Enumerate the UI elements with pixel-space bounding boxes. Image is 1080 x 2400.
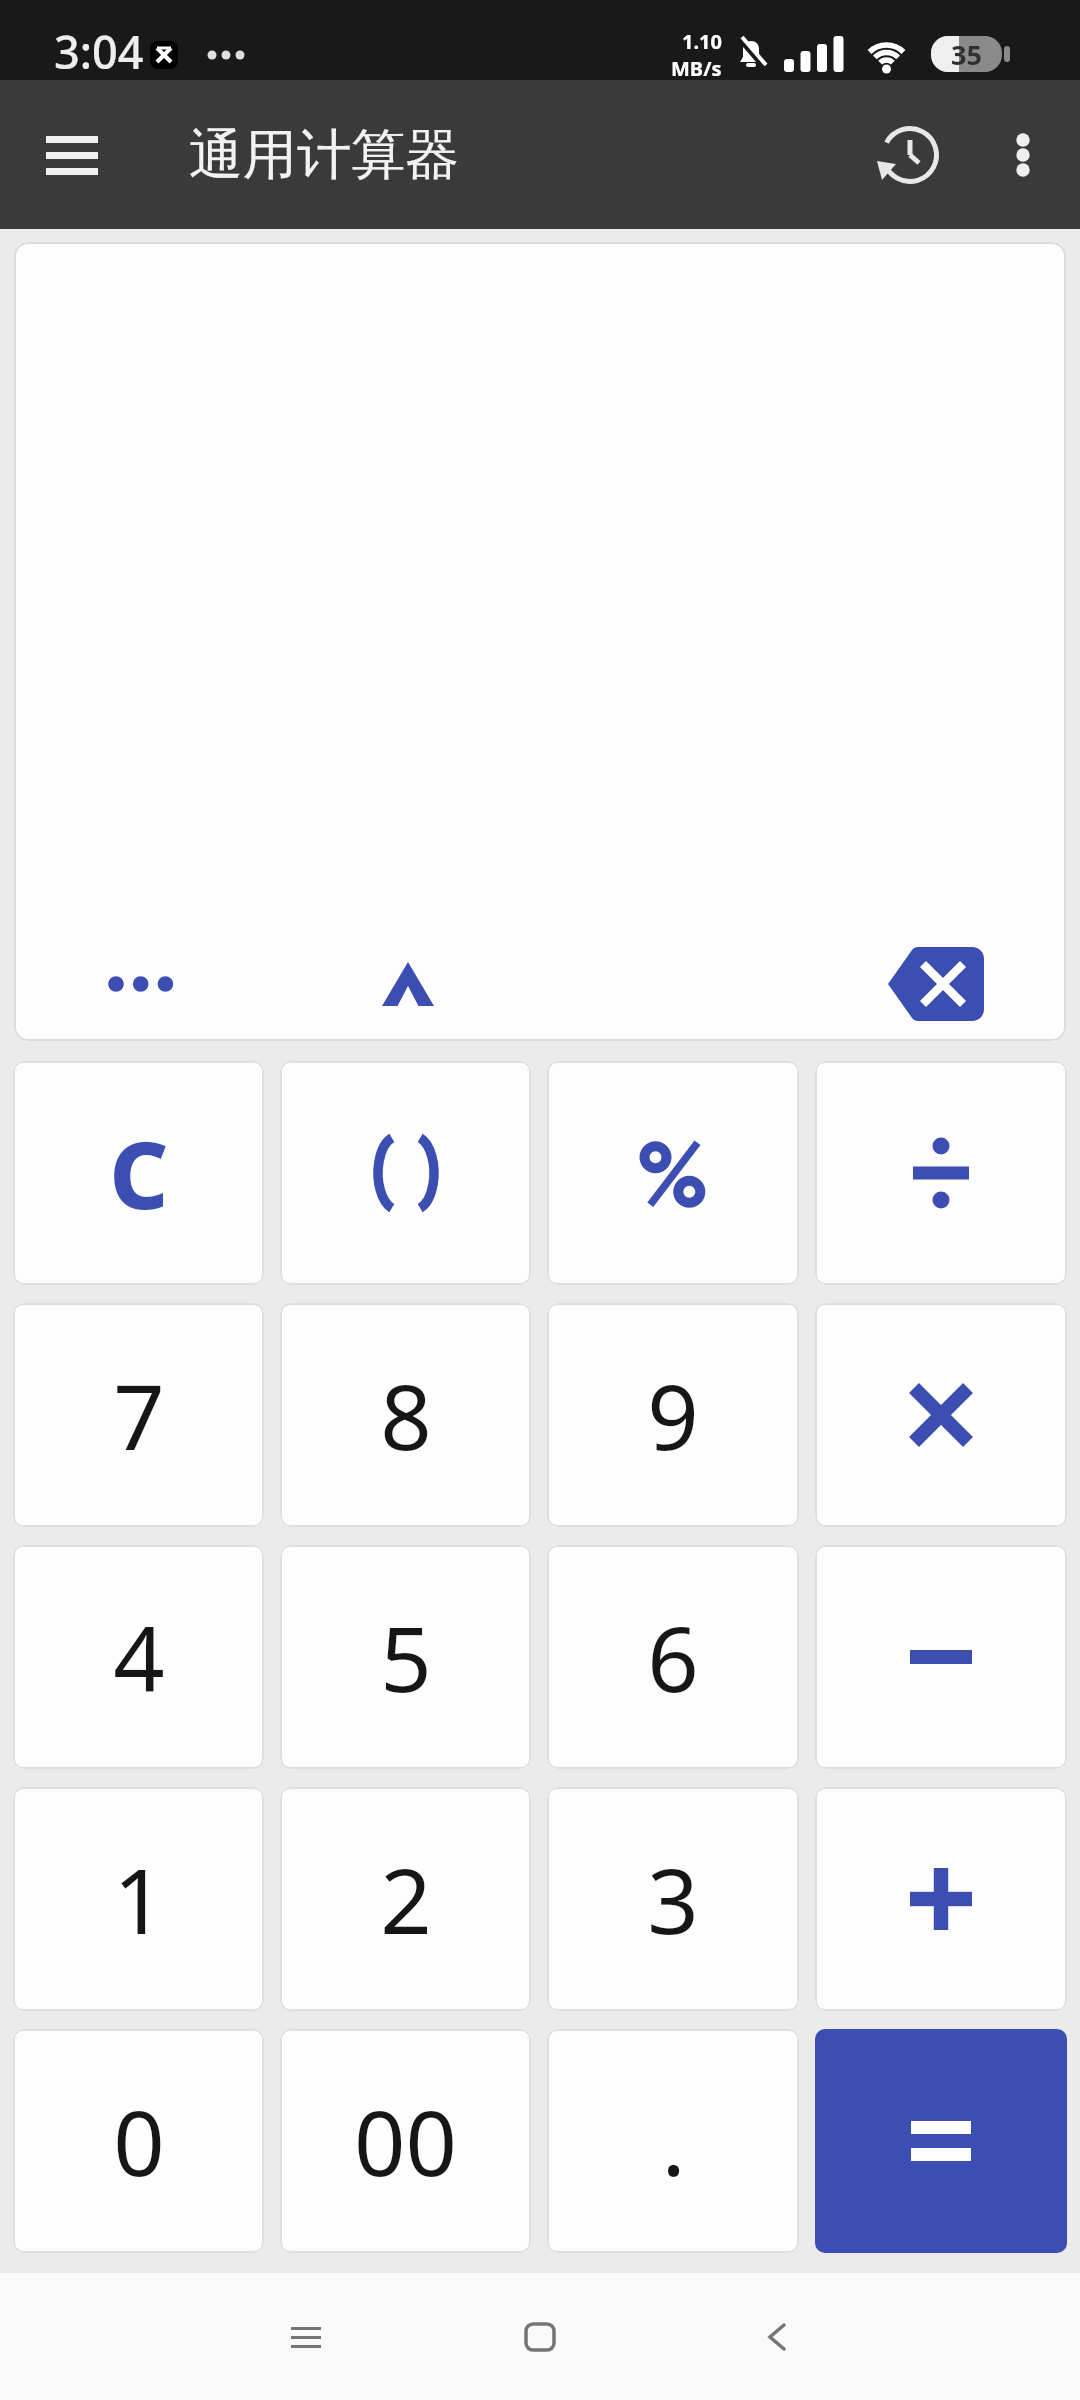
button[interactable] <box>256 2287 356 2387</box>
button[interactable] <box>280 1061 531 1285</box>
staticText: 9 <box>647 1354 699 1477</box>
button[interactable] <box>547 1061 799 1285</box>
staticText: 0 <box>113 2080 165 2203</box>
button[interactable]: 5 <box>280 1545 531 1769</box>
staticText: 35 <box>951 36 982 72</box>
staticText: 通用计算器 <box>189 121 459 189</box>
staticText: . <box>661 2080 686 2203</box>
button[interactable] <box>36 125 108 185</box>
staticText: 5 <box>380 1596 432 1719</box>
button[interactable]: 3 <box>547 1787 799 2011</box>
button[interactable] <box>874 932 998 1036</box>
button[interactable]: 6 <box>547 1545 799 1769</box>
button[interactable]: 4 <box>13 1545 264 1769</box>
button[interactable] <box>872 117 948 193</box>
button[interactable]: 2 <box>280 1787 531 2011</box>
staticText: 4 <box>113 1596 165 1719</box>
staticText: 8 <box>380 1354 432 1477</box>
staticText: 1.10 <box>682 28 722 55</box>
staticText: 00 <box>354 2080 457 2203</box>
button[interactable] <box>990 117 1056 193</box>
button[interactable]: 0 <box>13 2029 264 2253</box>
button[interactable]: . <box>547 2029 799 2253</box>
staticText: C <box>109 1111 169 1236</box>
button[interactable]: 7 <box>13 1303 264 1527</box>
staticText: 7 <box>113 1354 165 1477</box>
staticText: 3:04 <box>54 21 144 82</box>
button[interactable] <box>815 1545 1067 1769</box>
button[interactable]: C <box>13 1061 264 1285</box>
button[interactable] <box>815 1303 1067 1527</box>
button[interactable] <box>726 2287 826 2387</box>
staticText: MB/s <box>671 55 722 82</box>
button[interactable] <box>815 1787 1067 2011</box>
button[interactable] <box>366 932 450 1036</box>
button[interactable]: 8 <box>280 1303 531 1527</box>
button[interactable] <box>490 2287 590 2387</box>
staticText: 6 <box>647 1596 699 1719</box>
staticText: 1 <box>113 1838 165 1961</box>
button[interactable]: 9 <box>547 1303 799 1527</box>
button[interactable] <box>815 1061 1067 1285</box>
button[interactable]: 1 <box>13 1787 264 2011</box>
button[interactable] <box>76 942 206 1026</box>
staticText: 2 <box>380 1838 432 1961</box>
button[interactable]: 00 <box>280 2029 531 2253</box>
button[interactable] <box>815 2029 1067 2253</box>
staticText: 3 <box>647 1838 699 1961</box>
